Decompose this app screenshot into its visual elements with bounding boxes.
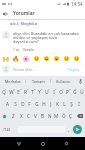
button[interactable]: P — [64, 86, 71, 98]
staticText: N — [48, 113, 52, 119]
staticText: T — [31, 89, 34, 95]
button[interactable]: Back — [0, 8, 11, 19]
button[interactable]: Emoji — [41, 52, 51, 62]
button[interactable]: Yanıtla — [23, 47, 34, 51]
staticText: Y — [38, 89, 41, 95]
button[interactable]: N — [46, 110, 53, 122]
staticText: 0 — [69, 87, 71, 90]
staticText: S — [14, 101, 17, 107]
button[interactable]: S — [11, 98, 19, 110]
button[interactable]: U — [43, 86, 50, 98]
button[interactable]: V — [32, 110, 39, 122]
button[interactable]: H — [40, 98, 47, 110]
button[interactable]: Send — [73, 125, 82, 134]
button[interactable]: W — [8, 86, 15, 98]
button[interactable]: Emoji — [1, 52, 11, 62]
button[interactable]: Back — [13, 138, 24, 149]
staticText: M — [54, 113, 59, 119]
staticText: K — [56, 101, 59, 107]
staticText: Paylaş — [68, 67, 80, 72]
button[interactable]: Z — [9, 110, 17, 122]
button[interactable]: Shift — [0, 110, 9, 122]
staticText: 4 — [27, 87, 29, 90]
staticText: 3 — [20, 87, 22, 90]
staticText: Q — [2, 89, 6, 95]
staticText: 5 — [34, 87, 36, 90]
button[interactable]: A — [3, 98, 11, 110]
staticText: P — [66, 89, 69, 95]
button[interactable]: O — [57, 86, 64, 98]
button[interactable]: Ö — [60, 110, 67, 122]
staticText: İ — [78, 101, 80, 107]
button[interactable]: Recent apps — [61, 138, 72, 149]
button[interactable]: Emoji — [51, 52, 61, 62]
button[interactable]: L — [61, 98, 68, 110]
button[interactable]: ?123 — [0, 122, 13, 137]
button[interactable]: K — [54, 98, 61, 110]
staticText: 1 — [5, 87, 7, 90]
button[interactable]: Emoji — [21, 52, 31, 62]
button[interactable]: Voice input — [75, 76, 85, 86]
button[interactable]: D — [19, 98, 26, 110]
button[interactable]: Yorum ekle… — [13, 67, 67, 72]
button[interactable]: Ş — [68, 98, 75, 110]
staticText: Ğ — [73, 89, 77, 95]
button[interactable]: J — [47, 98, 54, 110]
staticText: aliye.cftci Buradaki en çok kazandan etk… — [13, 31, 82, 45]
button[interactable]: Ğ — [71, 86, 78, 98]
staticText: D — [21, 101, 25, 107]
staticText: B — [41, 113, 44, 119]
staticText: J — [50, 101, 52, 107]
staticText: E — [17, 89, 20, 95]
staticText: G — [35, 101, 39, 107]
button[interactable]: Emoji — [11, 52, 21, 62]
staticText: I — [53, 89, 55, 95]
button[interactable]: Home — [37, 138, 48, 149]
button[interactable]: Kullanıcı — [51, 76, 75, 86]
staticText: U — [45, 89, 49, 95]
staticText: 🙌 — [2, 55, 10, 62]
button[interactable]: Paylaş — [67, 66, 81, 73]
button[interactable]: . — [65, 122, 73, 137]
button[interactable]: X — [17, 110, 25, 122]
button[interactable]: E — [15, 86, 22, 98]
button[interactable]: İ — [75, 98, 82, 110]
button[interactable]: B — [39, 110, 46, 122]
staticText: 1 sa. — [13, 47, 21, 51]
button[interactable]: G — [33, 98, 40, 110]
staticText: 2 — [13, 87, 15, 90]
staticText: 7 — [48, 87, 50, 90]
staticText: F — [28, 101, 31, 107]
button[interactable]: I — [50, 86, 57, 98]
button[interactable]: Backspace — [74, 110, 85, 122]
button[interactable]: C — [25, 110, 32, 122]
button[interactable]: Q — [0, 86, 8, 98]
staticText: 6 — [41, 87, 43, 90]
button[interactable]: Tamam — [26, 76, 50, 86]
staticText: Z — [12, 113, 15, 119]
staticText: A — [6, 101, 9, 107]
button[interactable]: Emoji — [71, 52, 81, 62]
button[interactable]: T — [29, 86, 36, 98]
staticText: Ç — [69, 113, 72, 119]
button[interactable]: Merhaba — [0, 76, 25, 86]
staticText: C — [27, 113, 30, 119]
button[interactable]: Emoji — [61, 52, 71, 62]
staticText: Ö — [62, 113, 66, 119]
button[interactable]: M — [53, 110, 60, 122]
staticText: Yorumlar — [13, 10, 35, 17]
staticText: . — [68, 127, 70, 133]
staticText: 14:54 — [71, 1, 83, 7]
staticText: Tamam — [32, 79, 45, 84]
staticText: a.b.c_Meghika — [10, 21, 37, 26]
button[interactable]: Y — [36, 86, 43, 98]
button[interactable]: F — [26, 98, 33, 110]
button[interactable]: Ü — [78, 86, 85, 98]
button[interactable]: Ç — [67, 110, 74, 122]
staticText: 9 — [62, 87, 64, 90]
button[interactable]: R — [22, 86, 29, 98]
staticText: ?123 — [3, 127, 11, 132]
button[interactable]: Emoji — [31, 52, 41, 62]
staticText: 🌸 — [22, 55, 30, 62]
